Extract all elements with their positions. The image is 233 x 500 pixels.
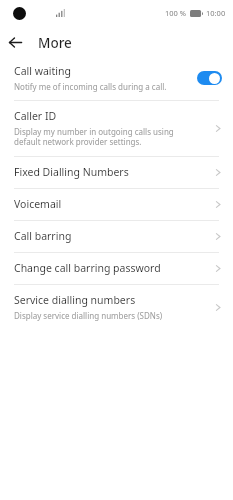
button[interactable]: Voicemail bbox=[0, 189, 233, 220]
button[interactable]: Change call barring password bbox=[0, 253, 233, 284]
staticText: Fixed Dialling Numbers bbox=[14, 165, 129, 179]
button[interactable]: Service dialling numbers bbox=[0, 285, 233, 330]
staticText: Display service dialling numbers (SDNs) bbox=[14, 310, 163, 321]
button[interactable]: Call waiting bbox=[0, 59, 233, 100]
staticText: More bbox=[38, 34, 72, 52]
staticText: Caller ID bbox=[14, 109, 57, 123]
staticText: Voicemail bbox=[14, 197, 62, 211]
staticText: Notify me of incoming calls during a cal… bbox=[14, 81, 167, 92]
staticText: Service dialling numbers bbox=[14, 293, 136, 307]
button[interactable]: Call barring bbox=[0, 221, 233, 252]
staticText: 10:00 bbox=[206, 8, 226, 18]
button[interactable]: Back bbox=[0, 27, 31, 58]
staticText: Display my number in outgoing calls usin… bbox=[14, 126, 174, 147]
staticText: Call barring bbox=[14, 229, 72, 243]
button[interactable]: Caller ID bbox=[0, 101, 233, 156]
staticText: Change call barring password bbox=[14, 261, 161, 275]
staticText: Call waiting bbox=[14, 64, 71, 78]
button[interactable]: Fixed Dialling Numbers bbox=[0, 157, 233, 188]
staticText: 100 % bbox=[165, 8, 187, 18]
button[interactable]: Call waiting toggle bbox=[197, 71, 222, 85]
